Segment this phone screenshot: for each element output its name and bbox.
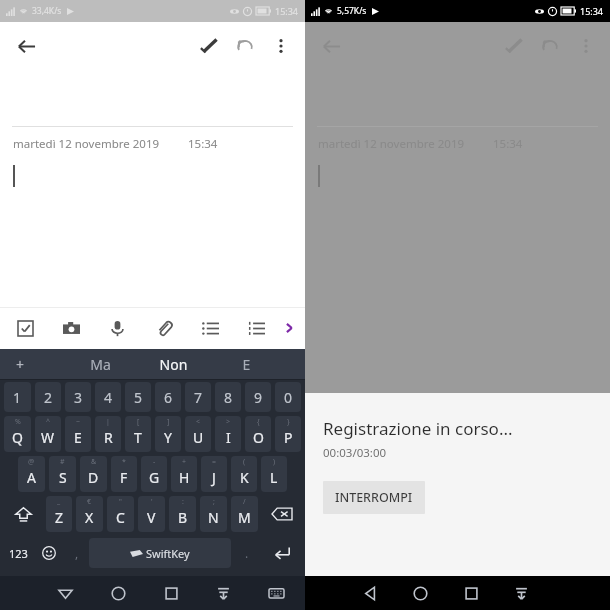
button[interactable]: }	[275, 416, 301, 452]
button[interactable]: Back	[50, 578, 80, 608]
staticText: F	[120, 468, 128, 487]
button[interactable]: %	[4, 416, 31, 452]
button[interactable]: More options	[263, 28, 299, 64]
button[interactable]: {	[245, 416, 271, 452]
button[interactable]: )	[261, 456, 287, 492]
button[interactable]: /	[231, 496, 258, 532]
staticText: T	[134, 428, 142, 447]
button[interactable]: Bulleted list	[195, 313, 225, 343]
button[interactable]: Checklist	[10, 313, 40, 343]
button[interactable]: Space	[89, 538, 231, 568]
button[interactable]: Emoji	[33, 534, 64, 572]
button[interactable]: 6	[155, 382, 181, 412]
staticText: #	[60, 457, 65, 467]
staticText: H	[179, 468, 190, 487]
staticText: :	[182, 497, 184, 507]
button[interactable]: More tools	[277, 311, 311, 345]
button[interactable]: Recents	[456, 578, 486, 608]
staticText: +	[182, 457, 187, 467]
button[interactable]: Undo	[227, 28, 263, 64]
button[interactable]: 4	[95, 382, 121, 412]
button[interactable]: ;	[200, 496, 227, 532]
staticText: Q	[12, 428, 23, 447]
button[interactable]: Backspace	[260, 494, 303, 534]
button[interactable]: ]	[155, 416, 181, 452]
staticText: G	[149, 468, 160, 487]
button[interactable]: _	[46, 496, 72, 532]
button[interactable]: Camera	[56, 313, 86, 343]
button[interactable]: Numbered list	[241, 313, 271, 343]
button[interactable]: Home	[103, 578, 133, 608]
staticText: 15:34	[493, 136, 523, 152]
button[interactable]: #	[49, 456, 76, 492]
button[interactable]: Hide keyboard	[208, 578, 238, 608]
button[interactable]: 8	[215, 382, 241, 412]
staticText: 123	[9, 546, 28, 561]
button[interactable]: =	[201, 456, 227, 492]
button[interactable]: Shift	[2, 494, 44, 534]
button[interactable]: 0	[275, 382, 301, 412]
button[interactable]: |	[95, 416, 121, 452]
button[interactable]: 1	[4, 382, 31, 412]
button[interactable]: -	[141, 456, 167, 492]
staticText: (	[243, 457, 246, 467]
button[interactable]: +	[171, 456, 197, 492]
button[interactable]: Home	[405, 578, 435, 608]
button[interactable]: &	[80, 456, 107, 492]
staticText: Registrazione in corso...	[323, 417, 513, 440]
button[interactable]: INTERROMPI	[323, 481, 425, 514]
staticText: SwiftKey	[146, 546, 190, 561]
button[interactable]: Edit	[496, 28, 532, 64]
button[interactable]: 123	[3, 534, 33, 572]
button[interactable]: (	[231, 456, 257, 492]
staticText: {	[257, 417, 260, 427]
button[interactable]: ,	[64, 534, 89, 572]
button[interactable]: ^	[35, 416, 61, 452]
staticText: S	[59, 468, 67, 487]
staticText: J	[212, 468, 216, 487]
button[interactable]: 5	[125, 382, 151, 412]
button[interactable]: Recents	[156, 578, 186, 608]
staticText: V	[147, 508, 156, 527]
staticText: =	[212, 457, 217, 467]
button[interactable]: Back	[8, 28, 44, 64]
button[interactable]: @	[18, 456, 45, 492]
button[interactable]: "	[107, 496, 134, 532]
staticText: martedì 12 novembre 2019	[13, 136, 160, 152]
button[interactable]: Microphone	[102, 313, 132, 343]
button[interactable]: €	[76, 496, 103, 532]
staticText: ~	[76, 417, 81, 427]
button[interactable]: Attach	[149, 313, 179, 343]
staticText: 6	[164, 388, 173, 407]
staticText: &	[91, 457, 97, 467]
button[interactable]: Switch keyboard	[261, 578, 291, 608]
button[interactable]: Back	[355, 578, 385, 608]
button[interactable]: 3	[65, 382, 91, 412]
staticText: INTERROMPI	[335, 489, 413, 506]
staticText: @	[28, 457, 35, 467]
staticText: ]	[167, 417, 170, 427]
staticText: E	[74, 428, 82, 447]
button[interactable]: [	[125, 416, 151, 452]
button[interactable]: <	[185, 416, 211, 452]
button[interactable]: *	[111, 456, 137, 492]
button[interactable]: Edit	[191, 28, 227, 64]
button[interactable]: Enter	[262, 534, 302, 572]
staticText: )	[273, 457, 276, 467]
staticText: R	[104, 428, 113, 447]
button[interactable]: Hide keyboard	[506, 578, 536, 608]
button[interactable]: 2	[35, 382, 61, 412]
button[interactable]: :	[169, 496, 196, 532]
button[interactable]: ~	[65, 416, 91, 452]
staticText: 15:34	[275, 5, 299, 17]
button[interactable]: 7	[185, 382, 211, 412]
button[interactable]: '	[138, 496, 165, 532]
staticText: _	[57, 497, 61, 507]
staticText: ;	[213, 497, 215, 507]
button[interactable]: 9	[245, 382, 271, 412]
button[interactable]: >	[215, 416, 241, 452]
